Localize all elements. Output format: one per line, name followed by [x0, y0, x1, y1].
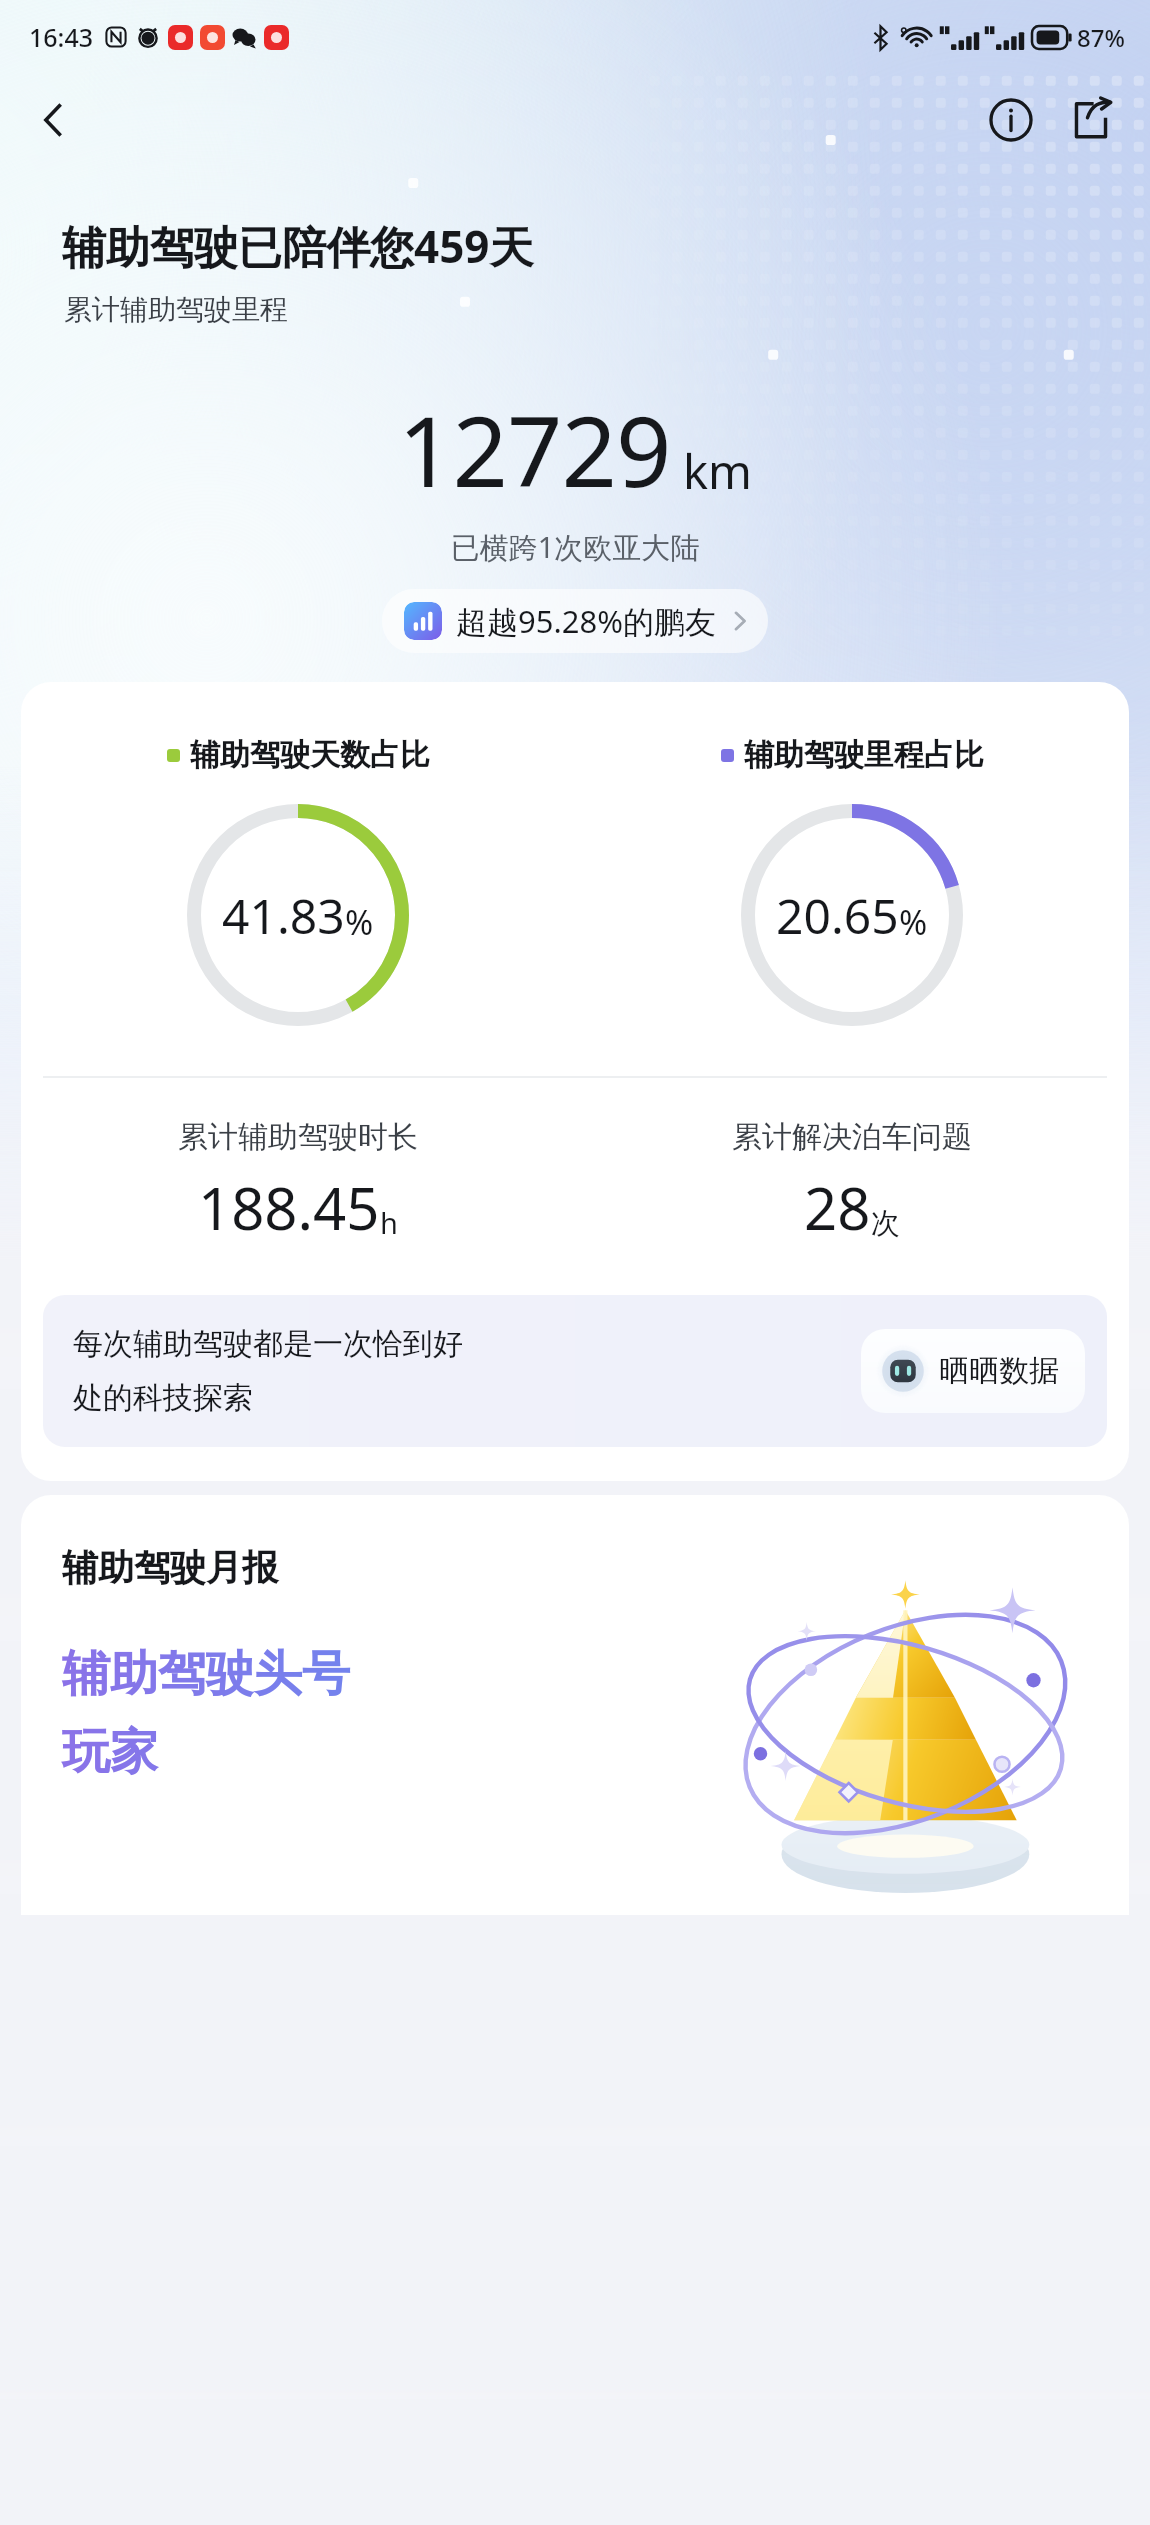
staticText: 累计辅助驾驶里程	[64, 292, 288, 327]
staticText: 超越95.28%的鹏友	[456, 600, 716, 642]
staticText: 累计辅助驾驶时长	[178, 1118, 418, 1156]
staticText: %	[345, 899, 374, 945]
staticText: 28	[804, 1168, 871, 1247]
button[interactable]: Back	[22, 88, 86, 152]
staticText: 次	[871, 1205, 900, 1242]
staticText: 玩家	[62, 1722, 158, 1782]
staticText: h	[380, 1203, 398, 1242]
button[interactable]: 晒晒数据	[861, 1329, 1085, 1413]
staticText: 41.83	[222, 883, 345, 948]
button[interactable]: Share	[1058, 87, 1124, 153]
staticText: 20.65	[776, 883, 899, 948]
button[interactable]: Information	[978, 87, 1044, 153]
staticText: 188.45	[198, 1168, 380, 1247]
staticText: 辅助驾驶月报	[62, 1545, 278, 1590]
staticText: 处的科技探索	[73, 1379, 253, 1417]
staticText: 12729	[398, 383, 671, 515]
staticText: 晒晒数据	[939, 1352, 1059, 1390]
staticText: km	[683, 439, 753, 503]
staticText: 辅助驾驶头号	[62, 1644, 350, 1704]
staticText: 辅助驾驶天数占比	[190, 736, 430, 774]
staticText: 已横跨1次欧亚大陆	[0, 527, 1150, 567]
staticText: 累计解决泊车问题	[732, 1118, 972, 1156]
staticText: 辅助驾驶里程占比	[744, 736, 984, 774]
staticText: 每次辅助驾驶都是一次恰到好	[73, 1325, 463, 1363]
staticText: 辅助驾驶已陪伴您459天	[62, 216, 534, 276]
staticText: 87%	[1077, 21, 1125, 54]
staticText: 16:43	[29, 20, 94, 54]
button[interactable]: 超越95.28%的鹏友	[382, 589, 768, 653]
staticText: %	[899, 899, 928, 945]
